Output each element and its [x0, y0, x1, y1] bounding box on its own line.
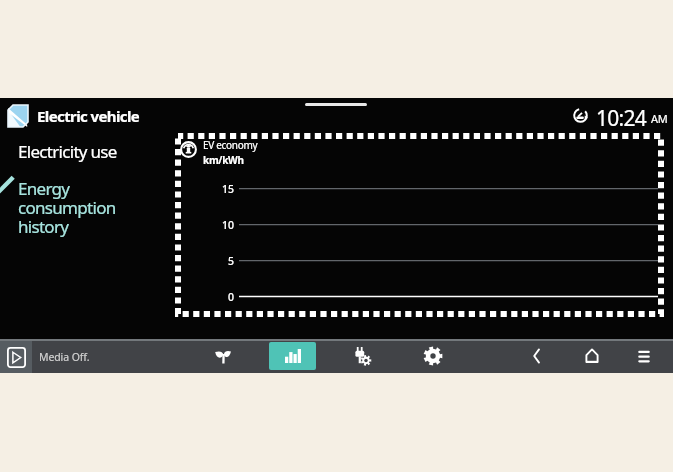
- button[interactable]: Eco driving: [210, 342, 236, 370]
- button[interactable]: Menu: [631, 342, 657, 370]
- staticText: AM: [651, 111, 668, 126]
- button[interactable]: Energy consumption history: [269, 342, 316, 370]
- button[interactable]: Electricity use: [18, 140, 117, 163]
- staticText: 10: [213, 218, 234, 232]
- staticText: EV economy: [203, 138, 258, 152]
- button[interactable]: Play media: [0, 341, 32, 373]
- staticText: 5: [213, 254, 234, 268]
- staticText: 15: [213, 182, 234, 196]
- staticText: Electric vehicle: [37, 106, 140, 126]
- staticText: Energy consumption history: [18, 177, 116, 238]
- staticText: km/kWh: [203, 153, 244, 167]
- staticText: Media Off.: [39, 350, 90, 364]
- button[interactable]: Settings: [420, 342, 446, 370]
- staticText: Electricity use: [18, 140, 117, 163]
- staticText: 0: [213, 290, 234, 304]
- button[interactable]: Home: [579, 342, 605, 370]
- button[interactable]: Energy consumption history: [18, 177, 116, 238]
- button[interactable]: Back: [524, 342, 550, 370]
- button[interactable]: Electric vehicle: [8, 105, 140, 127]
- button[interactable]: Media Off.: [39, 350, 90, 364]
- staticText: 10:24: [596, 104, 647, 133]
- button[interactable]: 15: [175, 133, 664, 317]
- button[interactable]: Charging settings: [349, 342, 375, 370]
